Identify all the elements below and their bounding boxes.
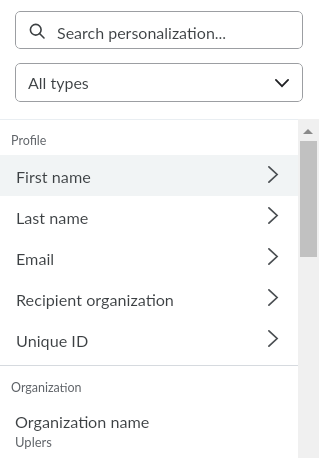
button[interactable]: All types xyxy=(15,63,303,102)
other: Open Email xyxy=(268,248,278,265)
other: Search xyxy=(28,20,48,40)
staticText: Search personalization... xyxy=(57,23,227,42)
other: Open First name xyxy=(268,166,278,183)
staticText: Organization name xyxy=(15,412,150,431)
button[interactable]: Organization name xyxy=(0,412,298,451)
button[interactable]: Last name xyxy=(0,196,298,237)
staticText: Unique ID xyxy=(16,331,89,350)
button[interactable]: Recipient organization xyxy=(0,278,298,319)
staticText: Last name xyxy=(16,208,89,227)
other: Open Last name xyxy=(268,207,278,224)
other: Scroll up xyxy=(303,129,313,134)
button[interactable]: First name xyxy=(0,155,298,196)
button[interactable]: Email xyxy=(0,237,298,278)
staticText: First name xyxy=(16,167,91,186)
staticText: Uplers xyxy=(15,434,52,450)
staticText: All types xyxy=(28,73,89,92)
staticText: Organization xyxy=(11,380,82,395)
button[interactable]: Unique ID xyxy=(0,319,298,360)
staticText: Profile xyxy=(11,133,47,148)
staticText: Email xyxy=(16,249,55,268)
button[interactable]: Search xyxy=(15,11,303,49)
other: Open Recipient organization xyxy=(268,289,278,306)
other: Open Unique ID xyxy=(268,330,278,347)
staticText: Recipient organization xyxy=(16,290,174,309)
